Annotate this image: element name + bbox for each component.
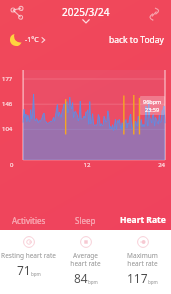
staticText: bpm: [31, 271, 41, 277]
staticText: 71: [17, 262, 31, 278]
staticText: 24: [113, 161, 165, 169]
button[interactable]: Link device: [145, 5, 163, 23]
staticText: 117: [127, 270, 148, 286]
staticText: 12: [61, 161, 113, 169]
staticText: Activities: [12, 215, 46, 226]
staticText: 96bpm: [143, 98, 162, 105]
staticText: 104: [2, 125, 13, 133]
button[interactable]: -1°C: [8, 32, 46, 48]
staticText: Average heart rate: [70, 251, 101, 268]
staticText: 23:59: [145, 106, 160, 113]
staticText: back to Today: [109, 34, 164, 46]
button[interactable]: Sleep: [57, 210, 114, 230]
button[interactable]: Share: [7, 4, 27, 24]
staticText: 2025/3/24: [62, 5, 110, 19]
button[interactable]: 2025/3/24: [62, 5, 110, 24]
staticText: Sleep: [75, 215, 96, 226]
staticText: bpm: [88, 279, 98, 285]
button[interactable]: Activities: [0, 210, 57, 230]
button[interactable]: Heart Rate: [114, 210, 171, 230]
staticText: 146: [2, 100, 13, 108]
staticText: 177: [2, 75, 13, 83]
staticText: Maximum heart rate: [127, 251, 158, 268]
staticText: 84: [74, 270, 88, 286]
staticText: -1°C: [25, 35, 39, 45]
button[interactable]: back to Today: [109, 34, 164, 46]
staticText: 0: [10, 161, 61, 169]
staticText: Heart Rate: [120, 214, 166, 226]
button[interactable]: Maximum heart rate: [114, 236, 171, 294]
button[interactable]: Average heart rate: [57, 236, 114, 294]
button[interactable]: Resting heart rate: [0, 236, 57, 294]
staticText: Resting heart rate: [1, 251, 56, 260]
staticText: bpm: [148, 279, 158, 285]
